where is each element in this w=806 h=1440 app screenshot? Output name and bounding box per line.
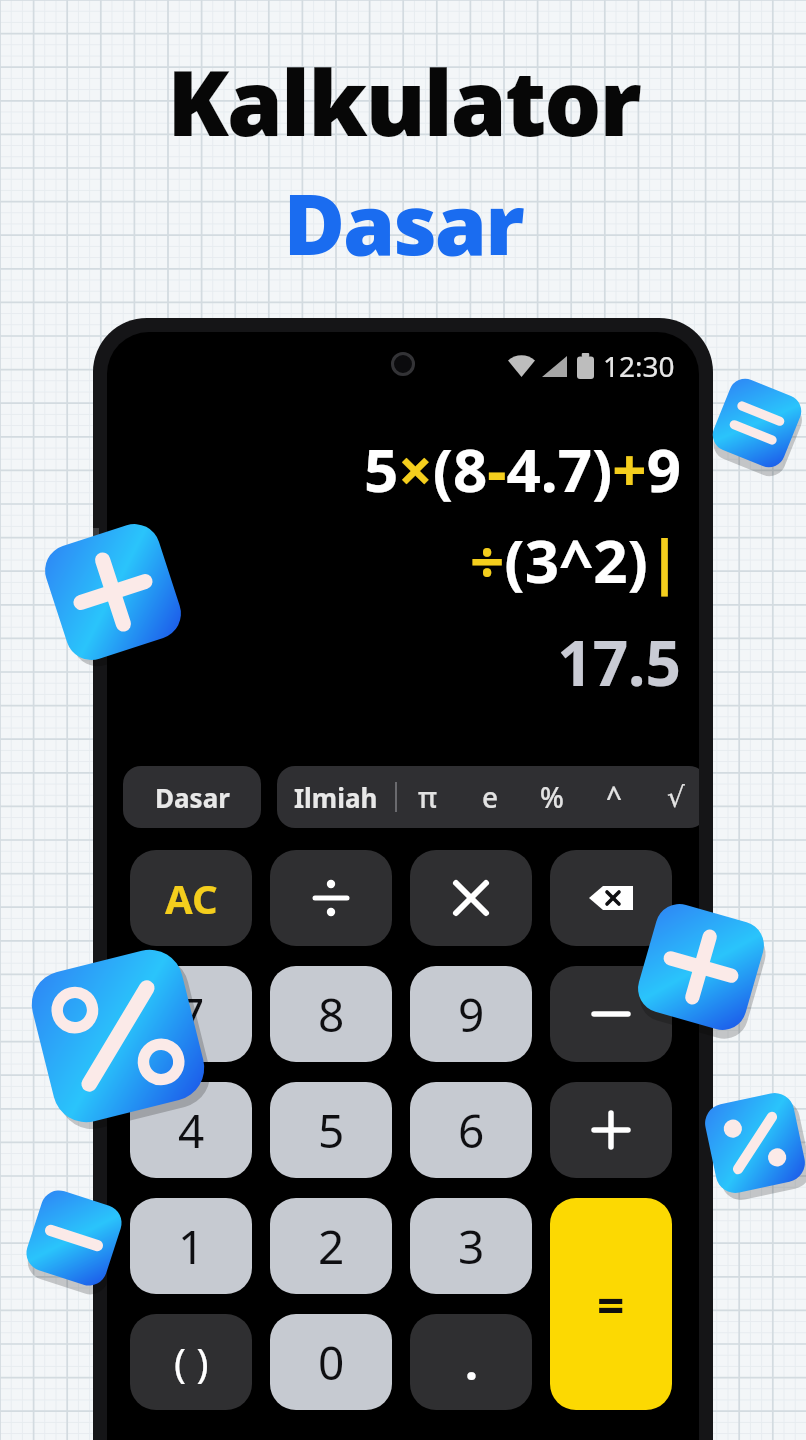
staticText: Kalkulator [167,40,640,163]
staticText: 3 [458,1215,485,1278]
button[interactable]: 2 [270,1198,392,1294]
staticText: . [465,1331,478,1394]
staticText: 1 [178,1215,205,1278]
staticText: % [540,778,564,816]
button[interactable]: Power [583,766,645,828]
button[interactable]: 7 [130,966,252,1062]
button[interactable]: 1 [130,1198,252,1294]
button[interactable]: Minus [550,966,672,1062]
staticText: e [482,778,499,816]
staticText: = [597,1272,625,1337]
staticText: AC [165,871,218,925]
staticText: 5×(8-4.7)+9 ÷(3^2)| [123,428,681,600]
button[interactable]: Divide [270,850,392,946]
staticText: √ [667,781,685,814]
button[interactable]: = [550,1198,672,1410]
staticText: Dasar [283,165,523,279]
button[interactable]: AC [130,850,252,946]
staticText: 7 [178,983,205,1046]
staticText: 6 [458,1099,485,1162]
staticText: 12:30 [603,347,675,385]
button[interactable]: 8 [270,966,392,1062]
staticText: 9 [458,983,485,1046]
staticText: Ilmiah [294,780,378,815]
button[interactable]: 6 [410,1082,532,1178]
staticText: ^ [606,778,623,816]
button[interactable]: Euler number [459,766,521,828]
staticText: 8 [318,983,345,1046]
button[interactable]: . [410,1314,532,1410]
button[interactable]: Dasar [123,766,261,828]
button[interactable]: Pi [397,766,459,828]
button[interactable]: 9 [410,966,532,1062]
staticText: ( ) [174,1335,209,1389]
button[interactable]: 3 [410,1198,532,1294]
button[interactable]: Percent [521,766,583,828]
staticText: π [418,778,438,816]
button[interactable]: Square root [645,766,699,828]
button[interactable]: Ilmiah [277,766,395,828]
button[interactable]: Plus [550,1082,672,1178]
staticText: 5 [318,1099,345,1162]
button[interactable]: Multiply [410,850,532,946]
button[interactable]: ( ) [130,1314,252,1410]
staticText: Dasar [155,780,230,815]
button[interactable]: Backspace [550,850,672,946]
staticText: 17.5 [123,620,681,704]
staticText: 2 [318,1215,345,1278]
button[interactable]: 5 [270,1082,392,1178]
button[interactable]: 4 [130,1082,252,1178]
staticText: 0 [318,1331,345,1394]
button[interactable]: 0 [270,1314,392,1410]
staticText: 4 [178,1099,205,1162]
